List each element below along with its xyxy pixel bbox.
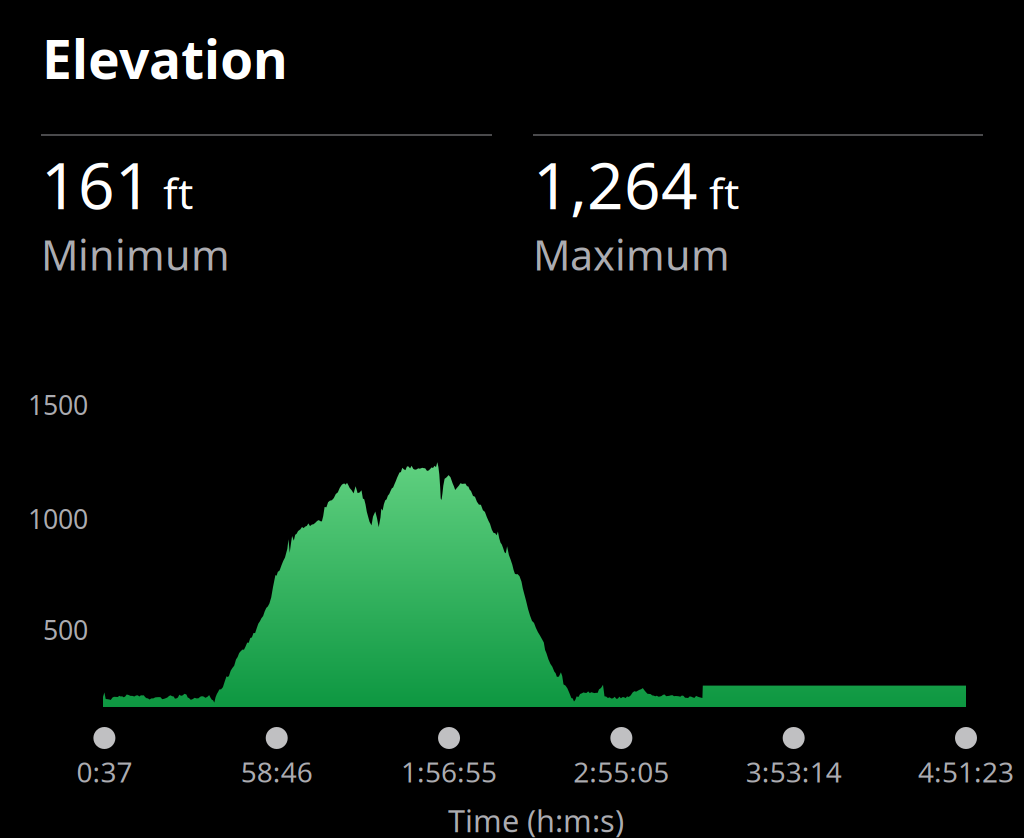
staticText: Minimum	[41, 227, 230, 282]
staticText: ft	[709, 164, 739, 221]
staticText: 500	[43, 612, 88, 647]
staticText: Maximum	[533, 227, 730, 282]
staticText: 3:53:14	[746, 753, 842, 790]
staticText: 161	[41, 142, 152, 227]
button[interactable]: Elevation chart	[103, 450, 966, 707]
staticText: 2:55:05	[573, 753, 669, 790]
button[interactable]: 1,264	[533, 142, 983, 282]
staticText: ft	[163, 164, 193, 221]
staticText: 1:56:55	[401, 753, 497, 790]
staticText: Time (h:m:s)	[448, 800, 624, 838]
staticText: 58:46	[241, 753, 313, 790]
staticText: 4:51:23	[918, 753, 1014, 790]
staticText: 0:37	[76, 753, 132, 790]
staticText: 1000	[28, 501, 88, 536]
staticText: 1,264	[533, 142, 698, 227]
button[interactable]: 161	[41, 142, 492, 282]
staticText: Elevation	[42, 23, 288, 94]
staticText: 1500	[28, 387, 88, 422]
